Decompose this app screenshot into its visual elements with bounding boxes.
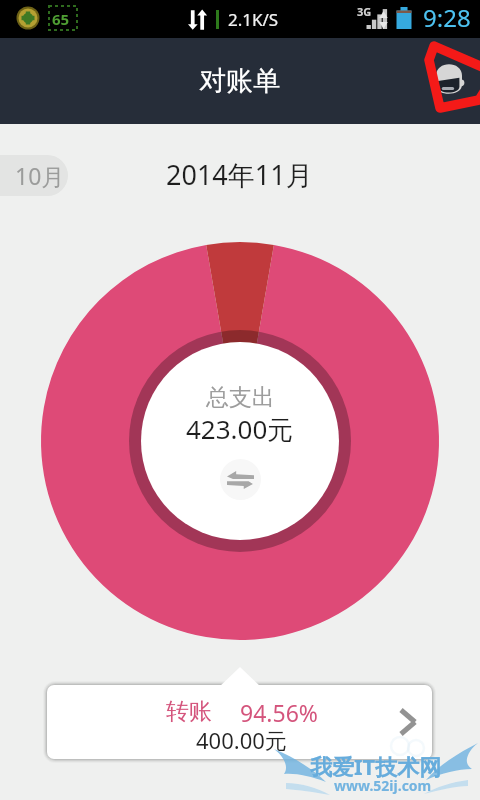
staticText: 2.1K/S [228,8,279,31]
staticText: 9:28 [423,1,471,34]
staticText: 3G [357,4,372,19]
staticText: 423.00元 [186,411,294,447]
button[interactable]: 10月 [0,155,68,196]
staticText: 400.00元 [196,725,287,755]
staticText: 转账 [166,697,212,726]
staticText: 10月 [15,160,65,191]
staticText: 2014年11月 [166,156,313,193]
button[interactable]: Switch view [220,459,261,500]
staticText: 94.56% [240,697,318,728]
button[interactable]: Profile [430,58,464,92]
staticText: 65 [52,9,70,29]
staticText: 总支出 [206,383,275,412]
staticText: www.52ij.com [334,776,432,795]
staticText: 对账单 [199,64,280,98]
staticText: 我爱IT技术网 [310,751,442,781]
button[interactable]: 转账 [47,685,432,759]
